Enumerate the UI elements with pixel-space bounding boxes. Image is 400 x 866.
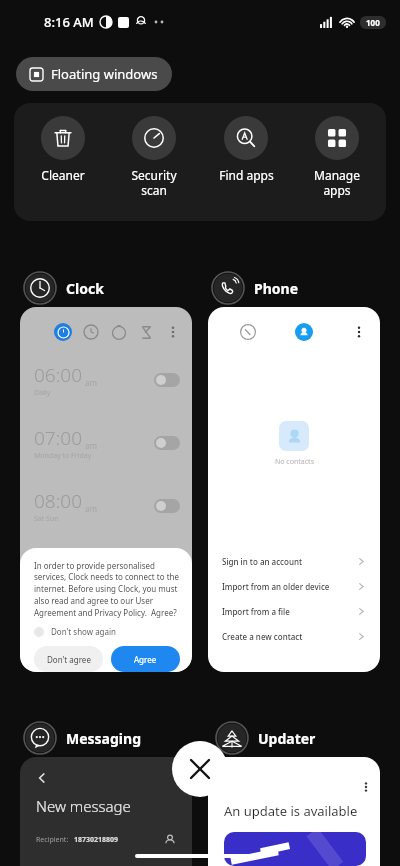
- button[interactable]: Find apps: [203, 116, 289, 183]
- staticText: 08:00: [34, 488, 83, 514]
- staticText: 8:16 AM: [44, 13, 94, 31]
- staticText: Daily: [34, 388, 51, 398]
- button[interactable]: No contacts: [208, 307, 380, 672]
- staticText: Updater: [258, 729, 316, 748]
- button[interactable]: Close all: [172, 741, 228, 797]
- staticText: am: [85, 377, 97, 388]
- staticText: 100: [366, 17, 380, 28]
- staticText: Agree: [134, 654, 157, 665]
- staticText: Floating windows: [51, 65, 158, 83]
- button[interactable]: Clock: [24, 272, 104, 304]
- staticText: New message: [36, 796, 131, 816]
- button[interactable]: Don't show again: [34, 626, 117, 637]
- button[interactable]: An update is available: [208, 757, 380, 866]
- staticText: No contacts: [275, 457, 314, 467]
- staticText: Cleaner: [41, 167, 85, 183]
- staticText: 06:00: [34, 362, 83, 388]
- button[interactable]: [154, 499, 180, 513]
- staticText: An update is available: [224, 802, 358, 820]
- staticText: 07:00: [34, 425, 83, 451]
- button[interactable]: Sign in to an account: [222, 549, 366, 574]
- staticText: Create a new contact: [222, 631, 303, 642]
- staticText: Don't agree: [47, 654, 91, 665]
- staticText: Import from a file: [222, 606, 290, 617]
- button[interactable]: 06:00: [20, 307, 192, 672]
- staticText: Manage apps: [314, 167, 360, 198]
- staticText: Find apps: [219, 167, 274, 183]
- staticText: Monday to Friday: [34, 451, 92, 461]
- staticText: Phone: [254, 279, 299, 298]
- staticText: In order to provide personalised service…: [34, 560, 180, 619]
- button[interactable]: New message: [20, 757, 192, 866]
- button[interactable]: Agree: [111, 646, 180, 672]
- button[interactable]: Updater: [216, 722, 316, 754]
- button[interactable]: Messaging: [24, 722, 141, 754]
- button[interactable]: Floating windows: [16, 57, 172, 91]
- button[interactable]: [154, 373, 180, 387]
- staticText: Don't show again: [51, 626, 117, 637]
- staticText: Recipient:: [36, 835, 69, 845]
- staticText: Clock: [66, 279, 104, 298]
- staticText: 18730218809: [74, 835, 119, 845]
- staticText: Sign in to an account: [222, 556, 302, 567]
- button[interactable]: Phone: [212, 272, 299, 304]
- button[interactable]: Manage apps: [294, 116, 380, 198]
- button[interactable]: Import from an older device: [222, 574, 366, 599]
- staticText: Import from an older device: [222, 581, 330, 592]
- staticText: Security scan: [131, 167, 177, 198]
- button[interactable]: Don't agree: [34, 646, 103, 672]
- staticText: Messaging: [66, 729, 141, 748]
- staticText: am: [85, 440, 97, 451]
- button[interactable]: Security scan: [111, 116, 197, 198]
- button[interactable]: [154, 436, 180, 450]
- button[interactable]: Cleaner: [20, 116, 106, 183]
- staticText: Sat Sun: [34, 514, 59, 524]
- button[interactable]: Import from a file: [222, 599, 366, 624]
- button[interactable]: Create a new contact: [222, 624, 366, 649]
- staticText: am: [85, 503, 97, 514]
